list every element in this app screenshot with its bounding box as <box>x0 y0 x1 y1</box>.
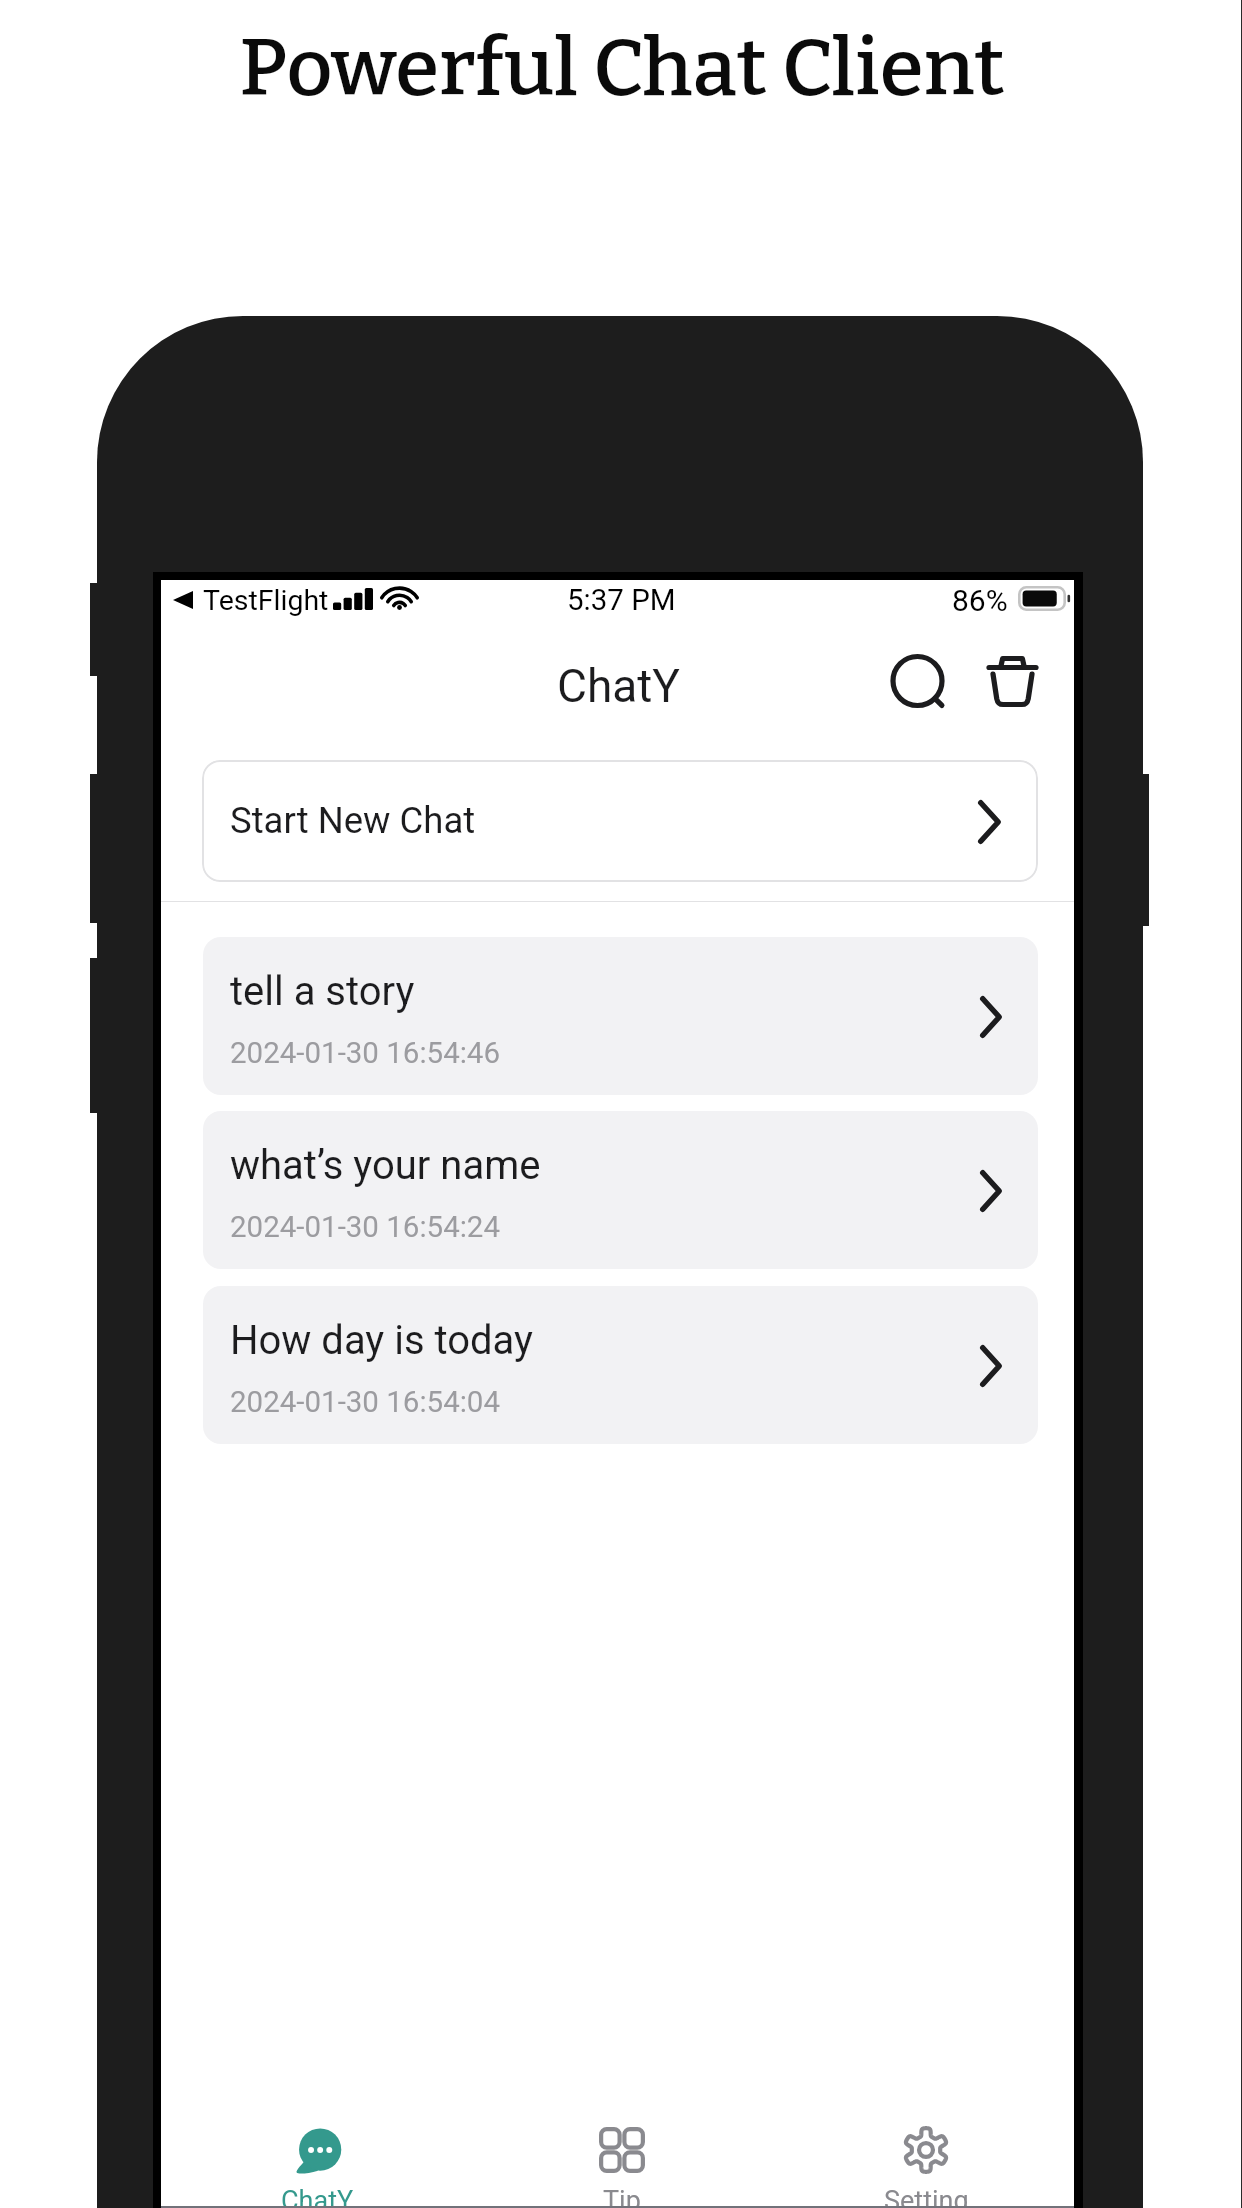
staticText: Start New Chat <box>230 799 476 842</box>
staticText: ChatY <box>281 2185 354 2208</box>
staticText: How day is today <box>230 1317 533 1364</box>
staticText: tell a story <box>230 968 415 1015</box>
button[interactable]: what’s your name <box>203 1111 1038 1269</box>
staticText: 86% <box>952 583 1008 618</box>
staticText: Setting <box>884 2185 969 2208</box>
button[interactable]: ChatY <box>165 2118 470 2208</box>
button[interactable]: Search <box>889 655 947 713</box>
staticText: 2024-01-30 16:54:24 <box>230 1210 501 1245</box>
staticText: 2024-01-30 16:54:04 <box>230 1385 501 1420</box>
button[interactable]: How day is today <box>203 1286 1038 1444</box>
staticText: what’s your name <box>230 1142 541 1189</box>
button[interactable]: tell a story <box>203 937 1038 1095</box>
button[interactable]: Start New Chat <box>202 760 1038 882</box>
button[interactable]: Tip <box>470 2118 774 2208</box>
staticText: Tip <box>603 2185 641 2208</box>
button[interactable]: Delete all chats <box>981 648 1045 712</box>
staticText: ChatY <box>557 659 680 713</box>
button[interactable]: Setting <box>774 2118 1078 2208</box>
staticText: Powerful Chat Client <box>1 20 1242 116</box>
staticText: 2024-01-30 16:54:46 <box>230 1036 501 1071</box>
staticText: TestFlight <box>203 584 329 617</box>
staticText: 5:37 PM <box>567 583 676 618</box>
